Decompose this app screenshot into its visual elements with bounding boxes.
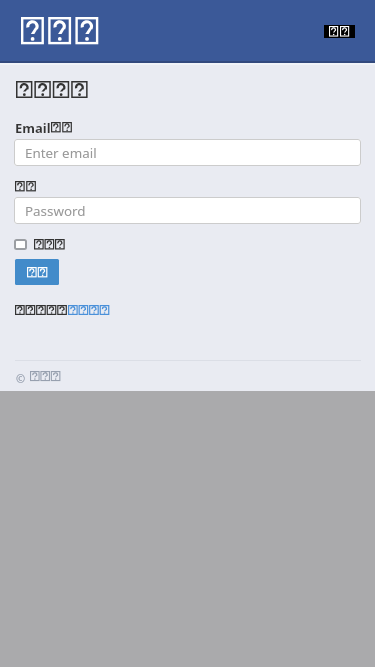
button[interactable]: Menu xyxy=(324,25,355,38)
button[interactable]: Home xyxy=(21,17,103,44)
button[interactable]: Password xyxy=(14,197,361,224)
staticText: Password xyxy=(25,202,86,220)
staticText: Enter email xyxy=(25,144,97,162)
staticText: Email xyxy=(15,119,51,137)
button[interactable]: Remember me xyxy=(14,239,66,250)
button[interactable]: Sign in xyxy=(15,259,59,285)
button[interactable]: Enter email xyxy=(14,139,361,166)
staticText: © xyxy=(16,371,26,386)
button[interactable]: Create an account xyxy=(68,305,110,315)
